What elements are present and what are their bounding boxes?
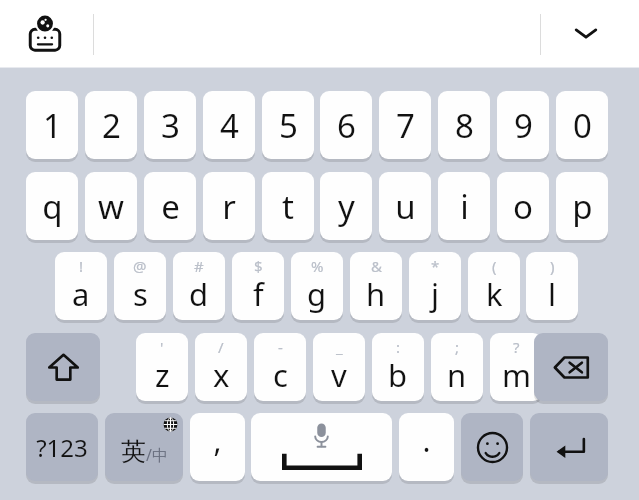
button[interactable]: & xyxy=(350,252,402,320)
button[interactable]: % xyxy=(291,252,343,320)
staticText: ) xyxy=(550,256,555,276)
button[interactable]: y xyxy=(320,172,372,240)
button[interactable]: $ xyxy=(232,252,284,320)
staticText: ? xyxy=(513,337,520,357)
staticText: l xyxy=(548,273,556,315)
staticText: s xyxy=(133,273,148,315)
staticText: _ xyxy=(336,337,343,357)
staticText: t xyxy=(282,184,294,229)
button[interactable]: w xyxy=(85,172,137,240)
staticText: ; xyxy=(455,337,460,357)
staticText: 1 xyxy=(43,103,62,148)
staticText: k xyxy=(486,273,503,315)
staticText: j xyxy=(431,273,439,315)
staticText: q xyxy=(42,184,63,229)
staticText: e xyxy=(161,184,180,229)
button[interactable]: 2 xyxy=(85,91,137,159)
staticText: /中 xyxy=(146,444,168,466)
button[interactable]: . xyxy=(399,413,454,481)
staticText: 2 xyxy=(102,103,121,148)
staticText: u xyxy=(395,184,416,229)
staticText: ?123 xyxy=(36,431,88,464)
button[interactable]: Enter xyxy=(530,413,608,481)
staticText: . xyxy=(422,420,431,461)
staticText: a xyxy=(72,273,90,315)
button[interactable]: 3 xyxy=(144,91,196,159)
button[interactable]: 4 xyxy=(203,91,255,159)
button[interactable]: ?123 xyxy=(26,413,98,481)
button[interactable]: 6 xyxy=(320,91,372,159)
button[interactable]: # xyxy=(173,252,225,320)
staticText: # xyxy=(194,256,204,276)
button[interactable]: 5 xyxy=(262,91,314,159)
staticText: d xyxy=(189,273,209,315)
staticText: ( xyxy=(492,256,497,276)
button[interactable]: ' xyxy=(136,333,188,401)
staticText: g xyxy=(307,273,327,315)
button[interactable]: _ xyxy=(313,333,365,401)
button[interactable]: t xyxy=(262,172,314,240)
staticText: n xyxy=(447,354,467,396)
staticText: , xyxy=(213,420,222,461)
button[interactable]: e xyxy=(144,172,196,240)
staticText: f xyxy=(253,273,264,315)
button[interactable]: * xyxy=(409,252,461,320)
button[interactable]: i xyxy=(438,172,490,240)
button[interactable]: ) xyxy=(526,252,578,320)
button[interactable]: Space xyxy=(251,413,392,481)
staticText: $ xyxy=(254,256,263,276)
staticText: 7 xyxy=(396,103,415,148)
button[interactable]: @ xyxy=(114,252,166,320)
staticText: w xyxy=(98,184,124,229)
button[interactable]: - xyxy=(254,333,306,401)
button[interactable]: ; xyxy=(431,333,483,401)
staticText: z xyxy=(155,354,170,396)
button[interactable]: ? xyxy=(490,333,542,401)
staticText: p xyxy=(572,184,593,229)
button[interactable]: o xyxy=(497,172,549,240)
button[interactable]: ( xyxy=(468,252,520,320)
button[interactable]: 0 xyxy=(556,91,608,159)
button[interactable]: r xyxy=(203,172,255,240)
staticText: o xyxy=(513,184,533,229)
button[interactable]: Emoji xyxy=(461,413,523,481)
staticText: ! xyxy=(79,256,84,276)
staticText: % xyxy=(311,256,324,276)
button[interactable]: Shift xyxy=(26,333,100,401)
staticText: @ xyxy=(133,256,147,276)
staticText: 9 xyxy=(514,103,533,148)
staticText: b xyxy=(388,354,408,396)
button[interactable]: 9 xyxy=(497,91,549,159)
button[interactable]: q xyxy=(26,172,78,240)
staticText: * xyxy=(431,256,440,276)
staticText: 0 xyxy=(573,103,592,148)
button[interactable]: 7 xyxy=(379,91,431,159)
button[interactable]: Switch language xyxy=(105,413,183,481)
button[interactable]: p xyxy=(556,172,608,240)
staticText: 5 xyxy=(279,103,298,148)
staticText: & xyxy=(371,256,382,276)
button[interactable]: u xyxy=(379,172,431,240)
button[interactable]: : xyxy=(372,333,424,401)
staticText: 4 xyxy=(220,103,239,148)
staticText: - xyxy=(278,337,283,357)
button[interactable]: 1 xyxy=(26,91,78,159)
button[interactable]: Hide keyboard xyxy=(561,8,611,58)
button[interactable]: Switch input language xyxy=(20,9,70,59)
staticText: ' xyxy=(160,337,164,357)
staticText: i xyxy=(460,184,469,229)
button[interactable]: ! xyxy=(55,252,107,320)
staticText: 8 xyxy=(455,103,474,148)
button[interactable]: Backspace xyxy=(534,333,608,401)
staticText: x xyxy=(213,354,230,396)
staticText: 3 xyxy=(161,103,180,148)
staticText: : xyxy=(396,337,401,357)
button[interactable]: 8 xyxy=(438,91,490,159)
button[interactable]: / xyxy=(195,333,247,401)
staticText: 6 xyxy=(337,103,356,148)
staticText: c xyxy=(273,354,288,396)
button[interactable]: , xyxy=(190,413,245,481)
staticText: 英 xyxy=(121,436,146,467)
staticText: y xyxy=(338,184,355,229)
staticText: h xyxy=(366,273,386,315)
